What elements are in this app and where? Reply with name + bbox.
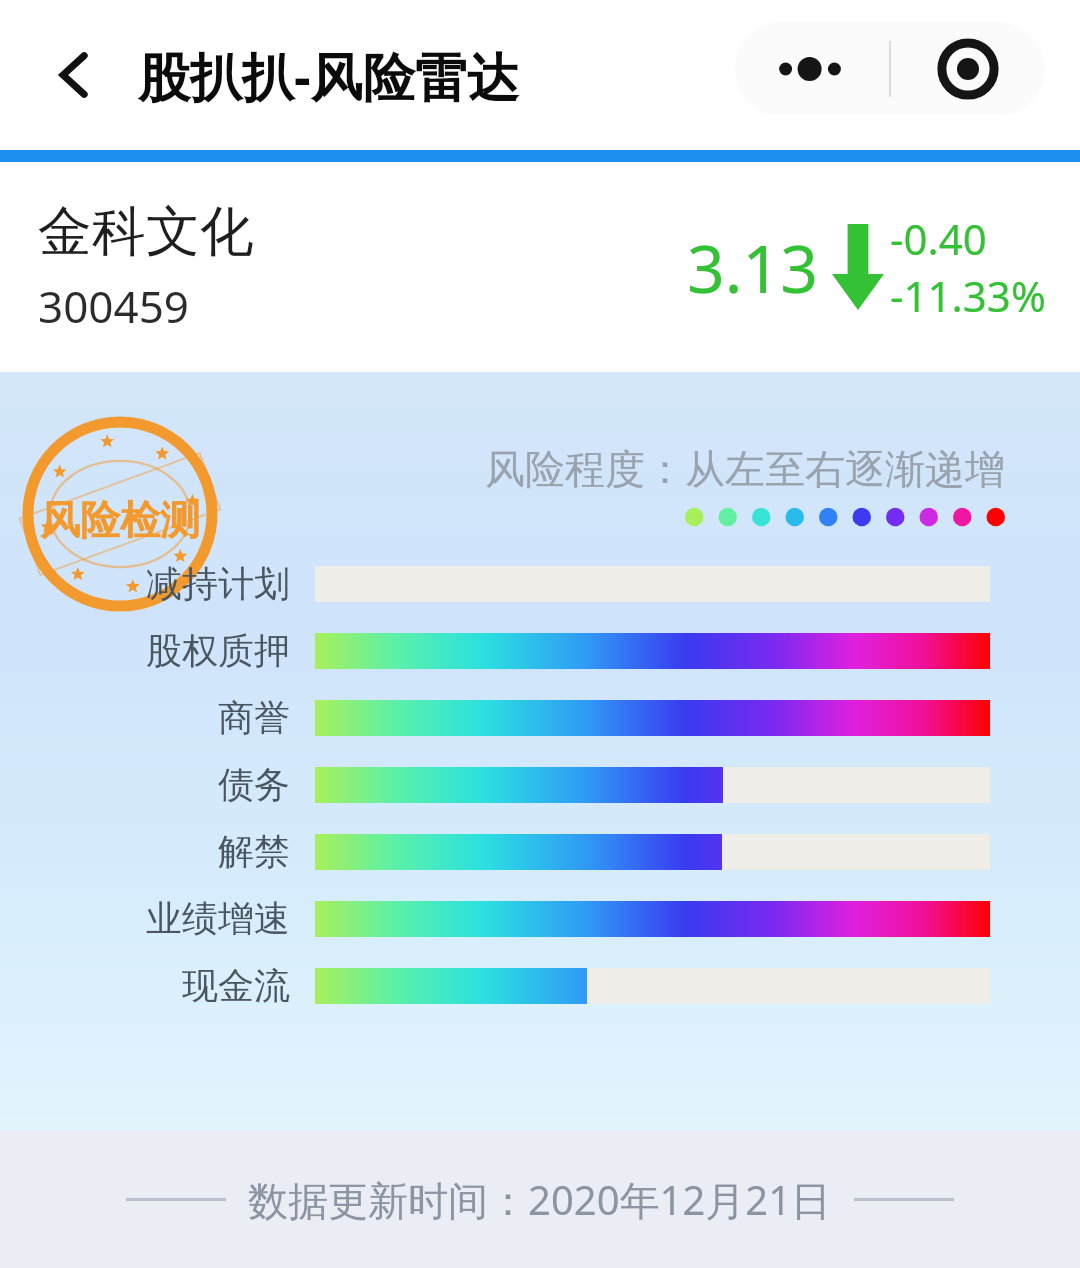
button[interactable]: 减持计划 bbox=[0, 550, 1080, 617]
button[interactable]: 解禁 bbox=[0, 818, 1080, 885]
staticText: 3.13 bbox=[687, 222, 818, 312]
staticText: 股权质押 bbox=[146, 628, 290, 673]
staticText: 现金流 bbox=[182, 963, 290, 1008]
staticText: 减持计划 bbox=[146, 561, 290, 606]
staticText: -0.40 bbox=[890, 210, 987, 267]
button[interactable]: 债务 bbox=[0, 751, 1080, 818]
staticText: 300459 bbox=[38, 276, 190, 336]
button[interactable]: 更多 bbox=[735, 22, 889, 116]
staticText: -11.33% bbox=[890, 267, 1046, 324]
button[interactable]: 商誉 bbox=[0, 684, 1080, 751]
button[interactable]: 关闭 bbox=[891, 22, 1045, 116]
staticText: 风险检测 bbox=[40, 495, 200, 545]
staticText: 金科文化 bbox=[38, 198, 254, 266]
staticText: 债务 bbox=[218, 762, 290, 807]
staticText: 解禁 bbox=[218, 829, 290, 874]
button[interactable]: 股权质押 bbox=[0, 617, 1080, 684]
staticText: 风险程度：从左至右逐渐递增 bbox=[485, 444, 1005, 494]
staticText: 业绩增速 bbox=[146, 896, 290, 941]
button[interactable]: 返回 bbox=[40, 40, 110, 110]
staticText: 数据更新时间：2020年12月21日 bbox=[248, 1172, 832, 1227]
staticText: 商誉 bbox=[218, 695, 290, 740]
button[interactable]: 现金流 bbox=[0, 952, 1080, 1019]
staticText: 股扒扒-风险雷达 bbox=[138, 40, 519, 111]
button[interactable]: 业绩增速 bbox=[0, 885, 1080, 952]
